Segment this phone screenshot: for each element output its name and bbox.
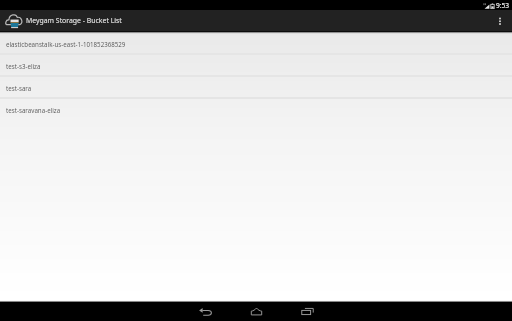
button[interactable]: test-sara: [0, 77, 512, 99]
staticText: Meygam Storage - Bucket List: [26, 16, 122, 25]
button[interactable]: Recent apps: [282, 302, 333, 321]
button[interactable]: Home: [231, 302, 282, 321]
button[interactable]: elasticbeanstalk-us-east-1-101852368529: [0, 33, 512, 55]
staticText: test-s3-eliza: [6, 62, 41, 70]
staticText: 9:53: [496, 1, 510, 10]
staticText: test-sara: [6, 84, 32, 92]
staticText: test-saravana-eliza: [6, 106, 61, 114]
button[interactable]: Back: [180, 302, 231, 321]
button[interactable]: More options: [488, 10, 512, 31]
button[interactable]: test-s3-eliza: [0, 55, 512, 77]
button[interactable]: test-saravana-eliza: [0, 99, 512, 121]
staticText: elasticbeanstalk-us-east-1-101852368529: [6, 40, 126, 48]
